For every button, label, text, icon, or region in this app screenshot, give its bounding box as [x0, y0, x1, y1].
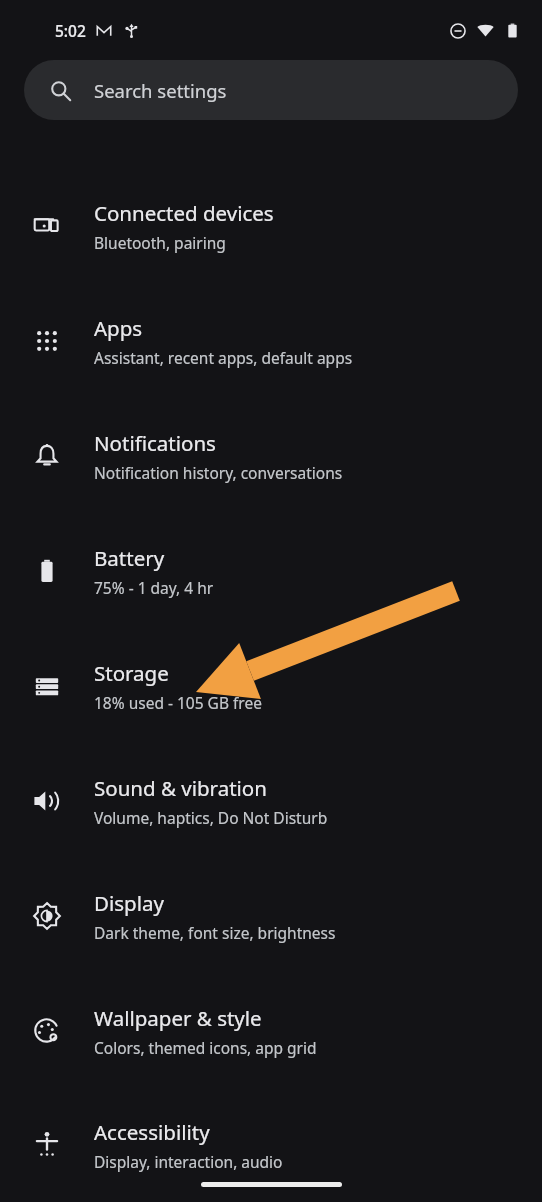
staticText: Notifications — [94, 429, 216, 457]
button[interactable]: Wallpaper & style — [0, 973, 542, 1088]
staticText: 18% used - 105 GB free — [94, 692, 262, 713]
staticText: Accessibility — [94, 1118, 210, 1146]
staticText: Connected devices — [94, 199, 274, 227]
staticText: Assistant, recent apps, default apps — [94, 347, 353, 368]
staticText: Apps — [94, 314, 143, 342]
staticText: Display — [94, 889, 164, 917]
staticText: 5:02 — [55, 20, 86, 41]
staticText: Bluetooth, pairing — [94, 232, 226, 253]
staticText: 75% - 1 day, 4 hr — [94, 577, 214, 598]
staticText: Colors, themed icons, app grid — [94, 1037, 317, 1058]
button[interactable]: Search settings — [24, 60, 518, 120]
staticText: Search settings — [94, 78, 227, 103]
button[interactable]: Sound & vibration — [0, 743, 542, 858]
staticText: Sound & vibration — [94, 774, 267, 802]
button[interactable]: Notifications — [0, 398, 542, 513]
staticText: Notification history, conversations — [94, 462, 343, 483]
button[interactable]: Battery — [0, 513, 542, 628]
button[interactable]: Connected devices — [0, 168, 542, 283]
staticText: Dark theme, font size, brightness — [94, 922, 336, 943]
button[interactable]: Apps — [0, 283, 542, 398]
staticText: Display, interaction, audio — [94, 1151, 283, 1172]
staticText: Volume, haptics, Do Not Disturb — [94, 807, 328, 828]
button[interactable]: Display — [0, 858, 542, 973]
button[interactable]: Storage — [0, 628, 542, 743]
staticText: Wallpaper & style — [94, 1004, 262, 1032]
staticText: Battery — [94, 544, 165, 572]
staticText: Storage — [94, 659, 169, 687]
button[interactable]: Accessibility — [0, 1088, 542, 1202]
